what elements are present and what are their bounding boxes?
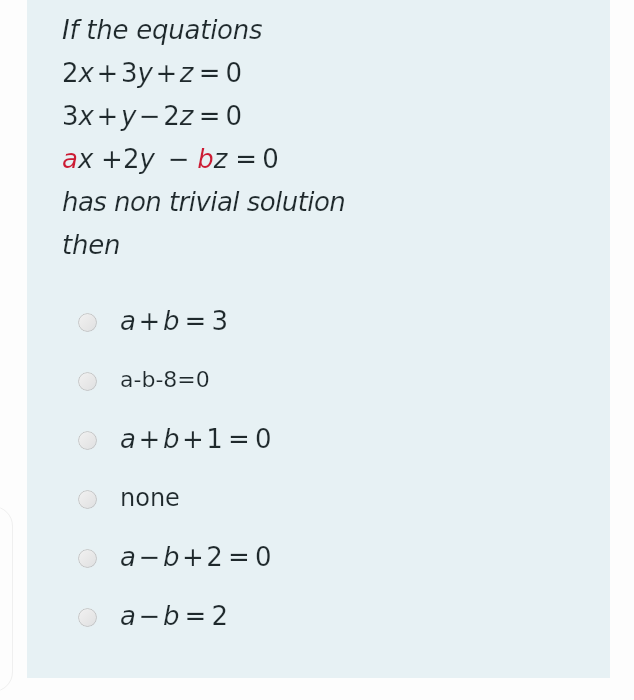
button[interactable]: Option none (27, 468, 610, 527)
staticText: a + b + 1 = 0 (120, 424, 272, 454)
staticText: a − b = 2 (120, 601, 229, 631)
staticText: a − b + 2 = 0 (120, 542, 272, 572)
button[interactable]: Option a minus b equals 2 (27, 586, 610, 645)
staticText: a-b-8=0 (120, 367, 210, 393)
button[interactable]: Option a plus b equals 3 (27, 291, 610, 350)
staticText: If the equations (62, 15, 263, 45)
staticText: ax +2y − bz = 0 (62, 144, 279, 174)
button[interactable]: Option a-b-8=0 (27, 350, 610, 409)
button[interactable]: Option a plus b plus 1 equals 0 (27, 409, 610, 468)
staticText: then (62, 230, 121, 260)
staticText: has non trivial solution (62, 187, 346, 217)
staticText: 2x + 3y + z = 0 (62, 58, 243, 88)
staticText: a + b = 3 (120, 306, 229, 336)
staticText: none (120, 484, 180, 512)
button[interactable]: Option a minus b plus 2 equals 0 (27, 527, 610, 586)
staticText: 3x + y − 2z = 0 (62, 101, 243, 131)
